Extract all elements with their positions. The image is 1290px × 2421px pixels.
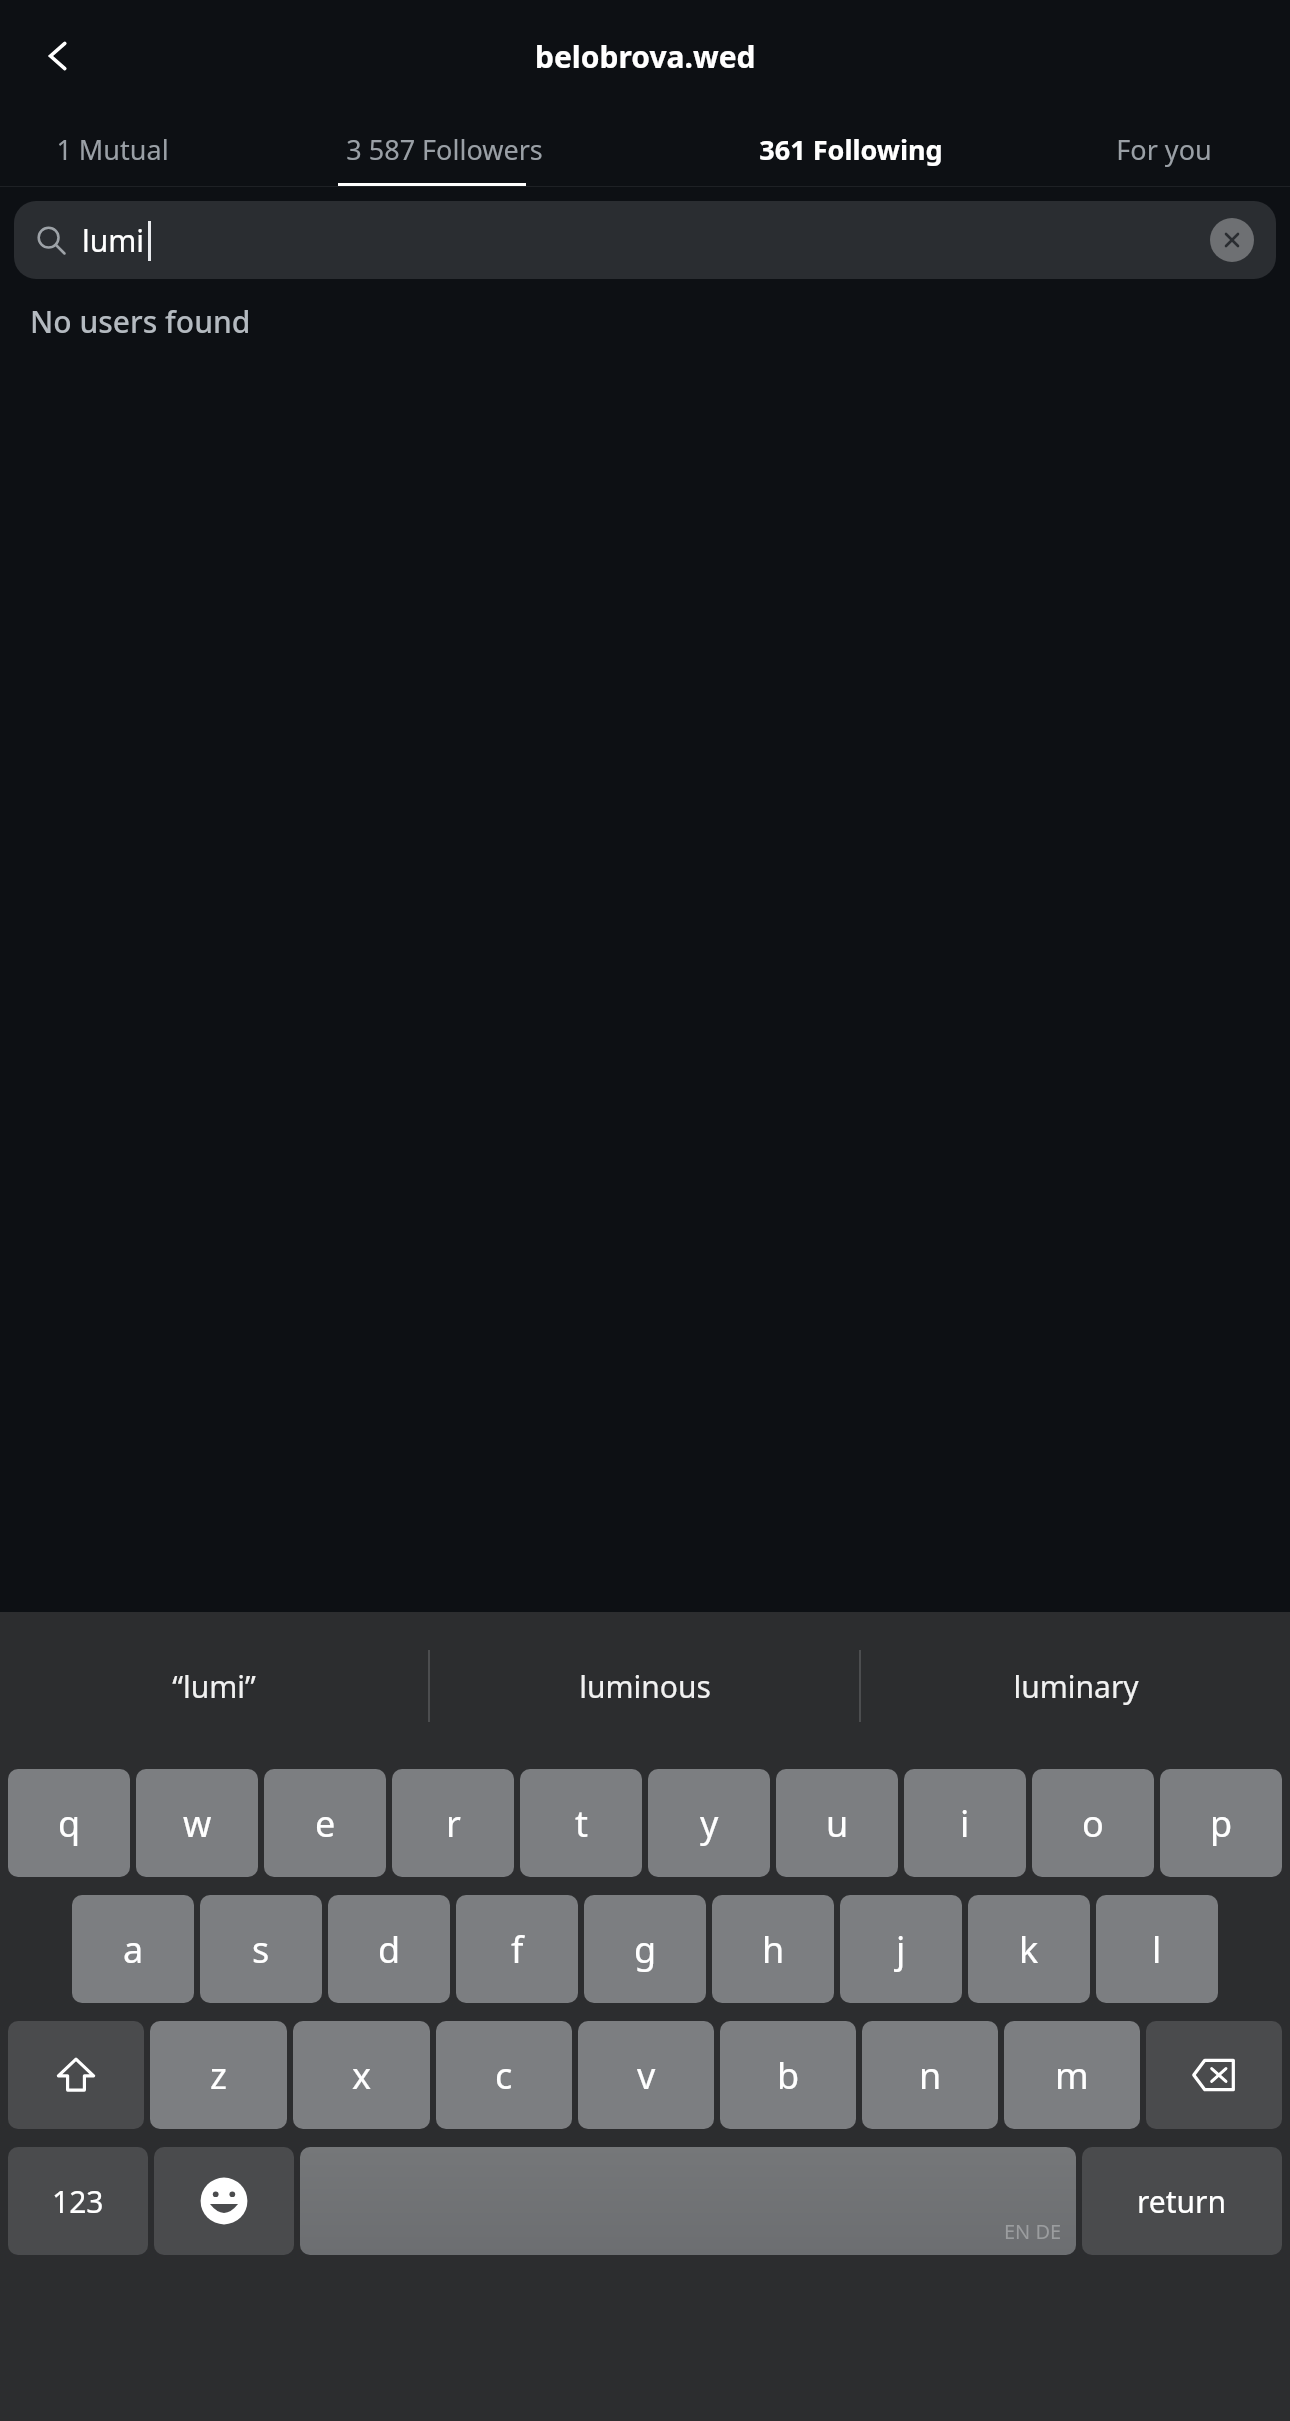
staticText: u — [826, 1799, 849, 1848]
button[interactable]: Clear — [1210, 218, 1254, 262]
button[interactable]: 3 587 Followers — [225, 112, 664, 187]
button[interactable]: luminary — [861, 1612, 1290, 1760]
staticText: e — [315, 1799, 336, 1848]
button[interactable]: l — [1096, 1895, 1218, 2003]
staticText: l — [1152, 1925, 1162, 1974]
button[interactable]: f — [456, 1895, 578, 2003]
staticText: m — [1055, 2051, 1089, 2100]
button[interactable]: lumi — [14, 201, 1276, 279]
button[interactable]: s — [200, 1895, 322, 2003]
button[interactable]: g — [584, 1895, 706, 2003]
staticText: return — [1137, 2181, 1227, 2222]
button[interactable]: return — [1082, 2147, 1282, 2255]
button[interactable]: p — [1160, 1769, 1282, 1877]
staticText: a — [123, 1925, 144, 1974]
button[interactable]: u — [776, 1769, 898, 1877]
button[interactable]: q — [8, 1769, 130, 1877]
button[interactable]: k — [968, 1895, 1090, 2003]
button[interactable]: v — [578, 2021, 714, 2129]
staticText: y — [700, 1799, 719, 1848]
button[interactable]: c — [436, 2021, 572, 2129]
button[interactable]: i — [904, 1769, 1026, 1877]
staticText: luminary — [1013, 1666, 1139, 1707]
button[interactable]: b — [720, 2021, 856, 2129]
button[interactable]: x — [293, 2021, 430, 2129]
button[interactable]: Shift — [8, 2021, 144, 2129]
button[interactable]: n — [862, 2021, 998, 2129]
staticText: 123 — [52, 2181, 104, 2222]
staticText: lumi — [82, 220, 145, 261]
staticText: i — [960, 1799, 970, 1848]
staticText: 3 587 Followers — [346, 131, 543, 168]
staticText: b — [777, 2051, 800, 2100]
button[interactable]: luminous — [430, 1612, 859, 1760]
button[interactable]: “lumi” — [0, 1612, 428, 1760]
staticText: 361 Following — [759, 131, 943, 168]
staticText: s — [252, 1925, 270, 1974]
staticText: p — [1210, 1799, 1233, 1848]
button[interactable]: m — [1004, 2021, 1140, 2129]
staticText: c — [495, 2051, 513, 2100]
button[interactable]: 361 Following — [664, 112, 1038, 187]
staticText: q — [58, 1799, 81, 1848]
staticText: EN DE — [1004, 2218, 1062, 2245]
staticText: r — [446, 1799, 461, 1848]
staticText: luminous — [579, 1666, 711, 1707]
staticText: k — [1019, 1925, 1039, 1974]
button[interactable]: Space — [300, 2147, 1076, 2255]
staticText: d — [378, 1925, 401, 1974]
staticText: w — [183, 1799, 212, 1848]
staticText: For you — [1116, 131, 1212, 168]
staticText: “lumi” — [172, 1666, 256, 1707]
staticText: v — [637, 2051, 656, 2100]
button[interactable]: Back — [22, 20, 94, 92]
staticText: f — [511, 1925, 524, 1974]
staticText: No users found — [30, 301, 251, 342]
button[interactable]: y — [648, 1769, 770, 1877]
staticText: t — [575, 1799, 588, 1848]
staticText: g — [634, 1925, 657, 1974]
button[interactable]: Emoji — [154, 2147, 294, 2255]
button[interactable]: d — [328, 1895, 450, 2003]
staticText: z — [210, 2051, 227, 2100]
button[interactable]: o — [1032, 1769, 1154, 1877]
staticText: o — [1082, 1799, 1104, 1848]
staticText: h — [762, 1925, 785, 1974]
button[interactable]: e — [264, 1769, 386, 1877]
button[interactable]: For you — [1038, 112, 1290, 187]
button[interactable]: z — [150, 2021, 287, 2129]
staticText: n — [919, 2051, 942, 2100]
button[interactable]: 123 — [8, 2147, 148, 2255]
button[interactable]: h — [712, 1895, 834, 2003]
button[interactable]: Backspace — [1146, 2021, 1282, 2129]
button[interactable]: t — [520, 1769, 642, 1877]
staticText: j — [896, 1925, 906, 1974]
staticText: x — [352, 2051, 372, 2100]
button[interactable]: a — [72, 1895, 194, 2003]
button[interactable]: 1 Mutual — [0, 112, 225, 187]
button[interactable]: r — [392, 1769, 514, 1877]
button[interactable]: w — [136, 1769, 258, 1877]
staticText: belobrova.wed — [535, 36, 756, 77]
staticText: 1 Mutual — [56, 131, 169, 168]
button[interactable]: j — [840, 1895, 962, 2003]
